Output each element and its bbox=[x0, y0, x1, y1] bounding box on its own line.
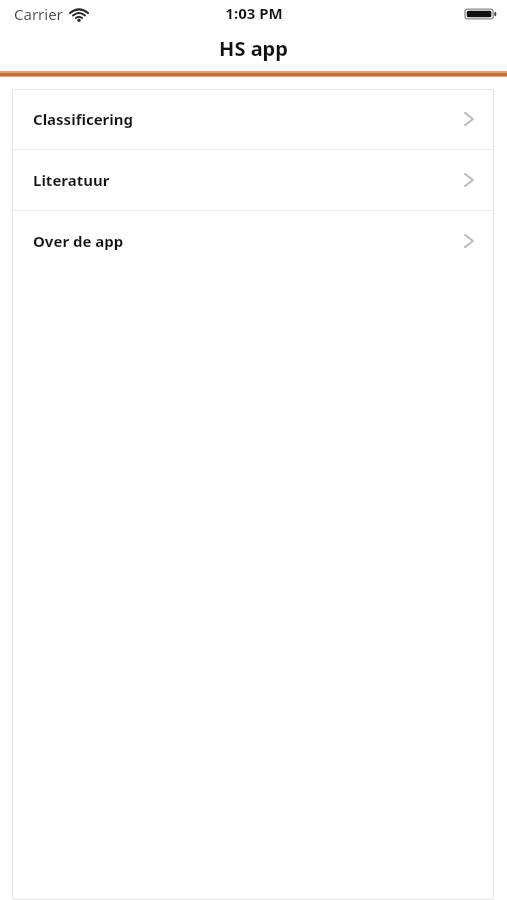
button[interactable]: Literatuur bbox=[12, 150, 494, 210]
button[interactable]: Over de app bbox=[12, 211, 494, 271]
staticText: Classificering bbox=[33, 109, 134, 129]
button[interactable]: Classificering bbox=[12, 89, 494, 149]
staticText: Carrier bbox=[14, 4, 63, 24]
staticText: 1:03 PM bbox=[225, 3, 283, 23]
staticText: Over de app bbox=[33, 231, 124, 251]
staticText: Literatuur bbox=[33, 170, 110, 190]
staticText: HS app bbox=[219, 35, 288, 62]
